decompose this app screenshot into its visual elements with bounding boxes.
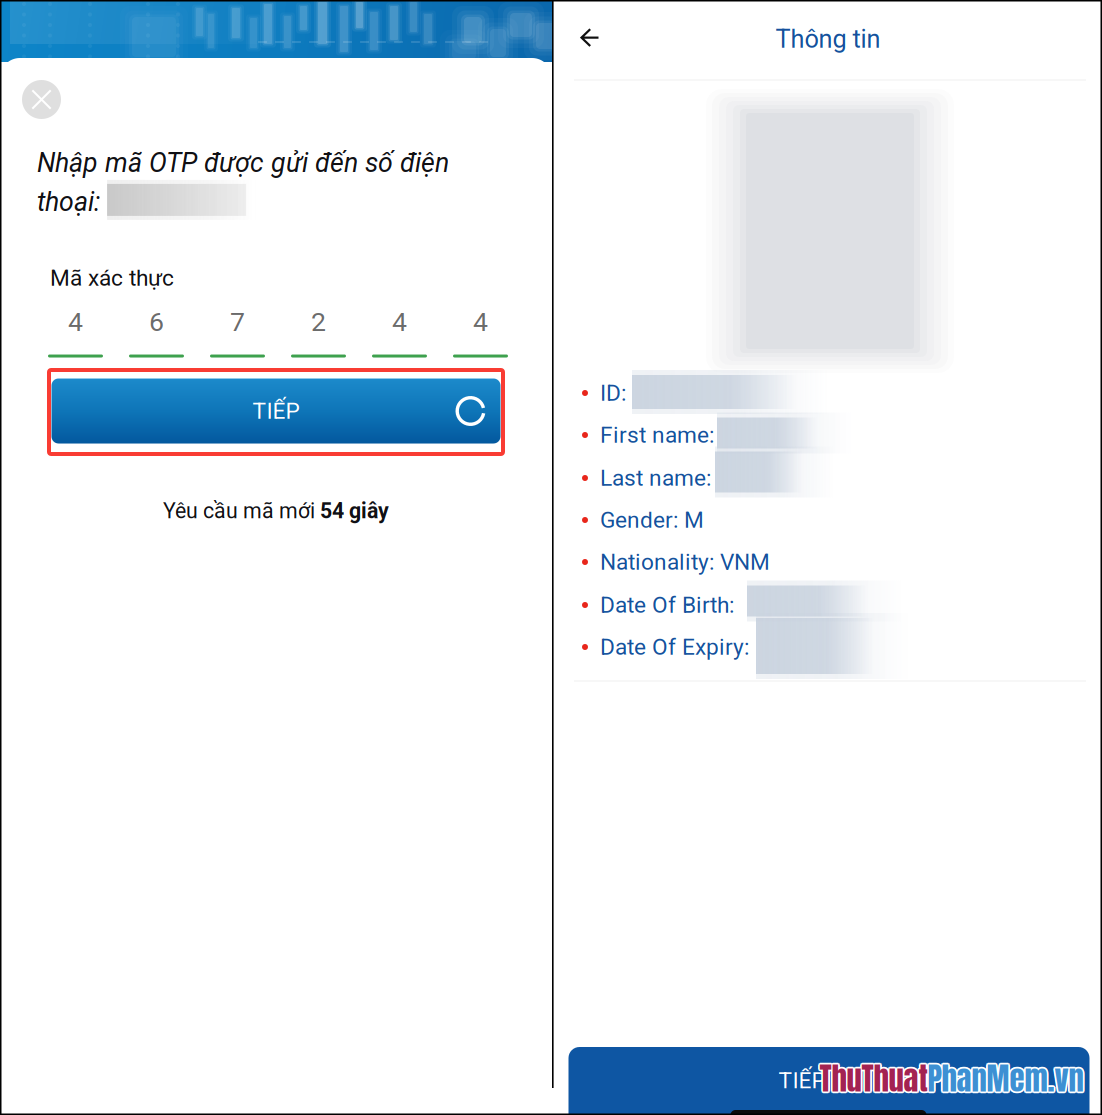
staticText: PhanMem.vn [926,1055,1082,1102]
staticText: 54 giây [320,498,389,523]
staticText: PhanMem.vn [929,1055,1085,1102]
staticText: 6 [149,306,164,338]
staticText: 4 [473,306,488,338]
staticText: First name: [600,422,714,448]
staticText: Date Of Birth: [600,592,734,618]
staticText: ThuThuat [821,1055,929,1102]
staticText: ThuThuat [819,1055,927,1102]
staticText: PhanMem.vn [927,1055,1083,1102]
staticText: ThuThuat [818,1055,926,1102]
staticText: Nationality: VNM [600,549,770,575]
staticText: ThuThuat [818,1054,926,1100]
staticText: ThuThuat [821,1057,929,1103]
staticText: 4 [68,306,83,338]
staticText: PhanMem.vn [927,1057,1083,1103]
staticText: TIẾP [778,1067,825,1094]
staticText: Nhập mã OTP được gửi đến số điện [37,147,449,179]
staticText: PhanMem.vn [926,1054,1082,1100]
button[interactable]: TIẾP [568,1047,1089,1115]
staticText: ID: [600,380,626,406]
staticText: thoại: [37,186,100,218]
staticText: Date Of Expiry: [600,634,749,660]
staticText: PhanMem.vn [929,1057,1085,1103]
staticText: TIẾP [252,398,299,424]
staticText: Mã xác thực [50,265,174,291]
staticText: PhanMem.vn [929,1054,1085,1100]
staticText: Last name: [600,465,711,491]
staticText: 2 [311,306,326,338]
button[interactable]: Back [566,14,612,60]
button[interactable]: TIẾP [51,378,500,443]
staticText: ThuThuat [818,1057,926,1103]
staticText: PhanMem.vn [927,1054,1083,1100]
staticText: Yêu cầu mã mới [163,498,320,523]
staticText: Thông tin [775,24,880,54]
staticText: ThuThuat [819,1054,927,1100]
staticText: 4 [392,306,407,338]
staticText: Gender: M [600,507,704,533]
staticText: 7 [230,306,245,338]
staticText: ThuThuat [821,1054,929,1100]
staticText: PhanMem.vn [926,1057,1082,1103]
button[interactable]: Close [22,80,61,119]
staticText: ThuThuat [819,1057,927,1103]
